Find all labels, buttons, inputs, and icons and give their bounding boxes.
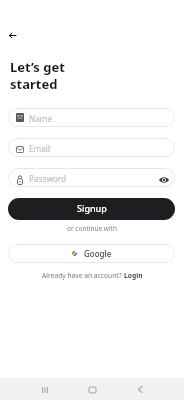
staticText: or continue with [0,224,184,233]
button[interactable]: Signup [8,198,175,220]
staticText: Name [29,113,53,124]
button[interactable]: Password [8,168,175,187]
button[interactable]: Home [82,379,103,400]
button[interactable]: Recent apps [34,379,55,400]
staticText: Email [29,143,51,154]
button[interactable]: Back [129,379,150,400]
button[interactable]: Back [2,25,23,46]
staticText: Password [29,173,67,184]
staticText: Let’s get started [10,58,65,93]
button[interactable]: Google [8,244,175,263]
staticText: Already have an account? [42,271,124,280]
button[interactable]: Show password [158,172,170,184]
staticText: Signup [77,202,107,214]
button[interactable]: Name [8,108,175,127]
button[interactable]: Email [8,138,175,157]
staticText: Google [84,248,112,259]
button[interactable]: Login [124,271,143,280]
